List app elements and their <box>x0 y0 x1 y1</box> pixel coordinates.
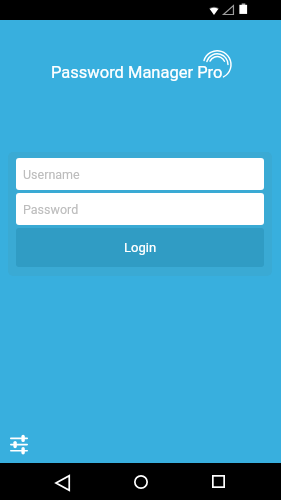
button[interactable]: Login <box>16 228 264 267</box>
staticText: Password <box>23 202 79 217</box>
button[interactable]: Username <box>16 158 264 190</box>
button[interactable]: Settings <box>6 432 32 458</box>
staticText: Username <box>23 167 80 182</box>
button[interactable]: Home <box>121 463 161 500</box>
button[interactable]: Recents <box>198 463 238 500</box>
button[interactable]: Password <box>16 193 264 225</box>
button[interactable]: Back <box>43 463 83 500</box>
staticText: Login <box>124 240 157 255</box>
staticText: Password Manager Pro <box>51 63 223 82</box>
